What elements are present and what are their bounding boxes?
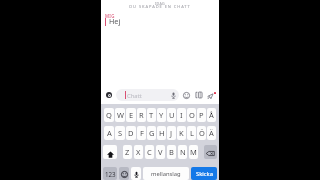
staticText: M: [190, 147, 197, 157]
button[interactable]: mellanslag: [143, 167, 189, 180]
button[interactable]: Camera: [106, 92, 112, 98]
staticText: U: [169, 110, 175, 120]
staticText: Ä: [209, 128, 214, 138]
button[interactable]: Z: [123, 145, 132, 159]
button[interactable]: N: [178, 145, 187, 159]
staticText: C: [147, 147, 152, 157]
staticText: MIG: [105, 13, 115, 19]
button[interactable]: Skicka: [191, 167, 217, 180]
button[interactable]: A: [104, 126, 114, 140]
staticText: A: [107, 128, 112, 138]
staticText: DU SKAPADE EN CHATT: [101, 4, 219, 9]
staticText: I: [180, 110, 183, 120]
button[interactable]: Chatt: [116, 89, 179, 101]
button[interactable]: V: [156, 145, 165, 159]
staticText: P: [199, 110, 204, 120]
staticText: H: [159, 128, 165, 138]
button[interactable]: Shift: [103, 145, 117, 159]
button[interactable]: P: [197, 108, 206, 122]
button[interactable]: Ö: [197, 126, 206, 140]
staticText: E: [129, 110, 134, 120]
button[interactable]: R: [137, 108, 146, 122]
button[interactable]: Emoji: [119, 167, 129, 180]
staticText: X: [136, 147, 141, 157]
button[interactable]: J: [167, 126, 176, 140]
button[interactable]: Q: [104, 108, 114, 122]
button[interactable]: Voice message: [169, 91, 177, 99]
button[interactable]: Backspace: [204, 145, 217, 159]
staticText: O: [189, 110, 195, 120]
staticText: V: [158, 147, 163, 157]
staticText: J: [170, 128, 173, 138]
button[interactable]: Y: [157, 108, 166, 122]
staticText: N: [180, 147, 186, 157]
button[interactable]: Send: [206, 90, 216, 100]
staticText: mellanslag: [151, 170, 181, 178]
button[interactable]: 123: [103, 167, 117, 180]
button[interactable]: K: [177, 126, 186, 140]
button[interactable]: Stickers: [181, 90, 191, 100]
staticText: D: [128, 128, 134, 138]
staticText: S: [118, 128, 123, 138]
button[interactable]: H: [157, 126, 166, 140]
button[interactable]: L: [187, 126, 196, 140]
staticText: R: [139, 110, 144, 120]
button[interactable]: M: [189, 145, 198, 159]
staticText: T: [149, 110, 154, 120]
staticText: Skicka: [196, 170, 213, 178]
staticText: IDAG: [101, 1, 219, 6]
staticText: Chatt: [127, 92, 142, 100]
staticText: Ö: [199, 128, 205, 138]
button[interactable]: D: [126, 126, 136, 140]
button[interactable]: I: [177, 108, 186, 122]
staticText: 123: [105, 170, 116, 178]
staticText: W: [117, 110, 124, 120]
button[interactable]: Ä: [207, 126, 216, 140]
staticText: L: [190, 128, 194, 138]
staticText: Z: [125, 147, 130, 157]
button[interactable]: C: [145, 145, 154, 159]
staticText: K: [179, 128, 184, 138]
staticText: G: [149, 128, 155, 138]
button[interactable]: S: [115, 126, 125, 140]
button[interactable]: Å: [207, 108, 216, 122]
staticText: Å: [209, 110, 214, 120]
button[interactable]: T: [147, 108, 156, 122]
staticText: Q: [106, 110, 112, 120]
button[interactable]: W: [115, 108, 125, 122]
button[interactable]: F: [137, 126, 146, 140]
button[interactable]: G: [147, 126, 156, 140]
staticText: Hej: [109, 16, 121, 26]
button[interactable]: U: [167, 108, 176, 122]
button[interactable]: GIF: [194, 90, 204, 100]
staticText: F: [140, 128, 144, 138]
staticText: B: [169, 147, 174, 157]
button[interactable]: B: [167, 145, 176, 159]
staticText: Y: [159, 110, 164, 120]
button[interactable]: X: [134, 145, 143, 159]
button[interactable]: O: [187, 108, 196, 122]
button[interactable]: E: [126, 108, 136, 122]
button[interactable]: Dictation: [131, 167, 141, 180]
